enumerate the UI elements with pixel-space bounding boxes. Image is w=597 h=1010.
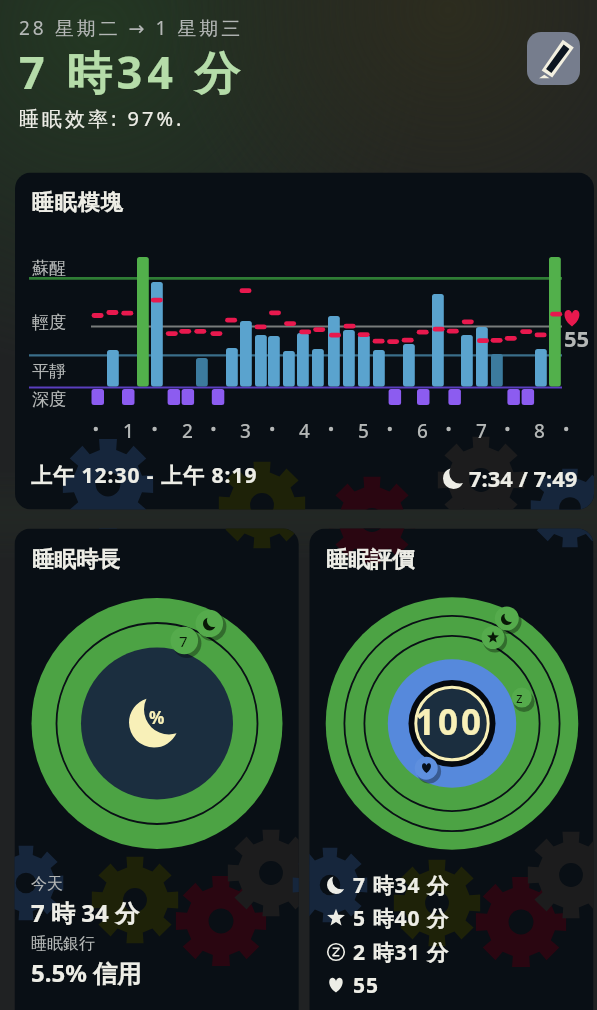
staticText: 7 時 34 分	[31, 896, 139, 929]
staticText: 1	[123, 418, 134, 444]
staticText: 7 時34 分	[19, 41, 245, 102]
button[interactable]: 睡眠模塊	[0, 0, 597, 1010]
staticText: 6	[417, 418, 428, 444]
staticText: 5	[358, 418, 369, 444]
staticText: 2 時31 分	[353, 938, 449, 967]
staticText: 7	[179, 631, 188, 651]
staticText: 100	[415, 698, 485, 746]
staticText: 3	[240, 418, 251, 444]
staticText: 睡眠模塊	[31, 189, 123, 217]
staticText: 今天	[31, 874, 63, 894]
staticText: 28 星期二 → 1 星期三	[19, 15, 244, 41]
staticText: 睡眠銀行	[31, 934, 95, 954]
staticText: z	[516, 688, 523, 707]
staticText: 7:34 / 7:49	[469, 463, 578, 493]
staticText: 7	[476, 418, 487, 444]
staticText: 睡眠效率: 97%.	[19, 105, 185, 132]
staticText: 上午 12:30 - 上午 8:19	[31, 461, 258, 490]
staticText: 5 時40 分	[353, 904, 449, 933]
staticText: 輕度	[32, 312, 66, 333]
staticText: 4	[299, 418, 310, 444]
staticText: 蘇醒	[32, 258, 66, 279]
staticText: 55	[353, 971, 380, 1000]
staticText: 平靜	[32, 361, 66, 382]
staticText: %	[149, 706, 165, 729]
staticText: 深度	[32, 389, 66, 410]
staticText: 5.5% 信用	[31, 956, 142, 989]
button[interactable]: Edit	[527, 32, 580, 85]
staticText: 7 時34 分	[353, 871, 449, 900]
button[interactable]	[15, 529, 299, 1010]
staticText: 55	[564, 323, 590, 353]
staticText: 2	[182, 418, 193, 444]
staticText: 8	[534, 418, 545, 444]
button[interactable]	[309, 529, 593, 1010]
staticText: 睡眠評價	[326, 546, 414, 574]
staticText: 睡眠時長	[32, 546, 120, 574]
